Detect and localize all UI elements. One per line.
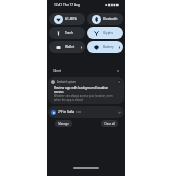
staticText: 12:41 Thu 17 Aug	[54, 3, 80, 7]
button[interactable]: Manage	[55, 120, 72, 127]
staticText: Glyphs	[103, 31, 121, 35]
button[interactable]: Clear all	[101, 120, 118, 127]
button[interactable]: A1-8EFA	[49, 13, 85, 25]
staticText: Silent	[53, 69, 61, 73]
button[interactable]: Battery s…	[87, 41, 123, 53]
staticText: Review app with background location acce…	[54, 86, 109, 94]
button[interactable]: 2°F in Sofia	[48, 106, 124, 118]
button[interactable]: Collapse	[117, 80, 121, 84]
button[interactable]: Glyphs	[87, 27, 123, 39]
staticText: 2°F in Sofia	[58, 110, 75, 114]
staticText: Android system	[57, 80, 77, 84]
staticText: Torch	[65, 31, 83, 35]
staticText: Bluetooth	[103, 17, 121, 21]
staticText: Wallet	[65, 45, 80, 49]
staticText: now	[76, 110, 82, 114]
button[interactable]: Wallet	[49, 41, 85, 53]
staticText: Battery s…	[103, 45, 118, 49]
button[interactable]: Notification settings	[116, 69, 120, 73]
staticText: A1-8EFA	[65, 17, 83, 21]
staticText: Weather can always access your location,…	[54, 94, 113, 102]
staticText: Manage	[58, 122, 69, 126]
button[interactable]: Bluetooth	[87, 13, 123, 25]
button[interactable]: Android system	[48, 77, 124, 104]
button[interactable]: Torch	[49, 27, 85, 39]
staticText: Clear all	[104, 122, 115, 126]
